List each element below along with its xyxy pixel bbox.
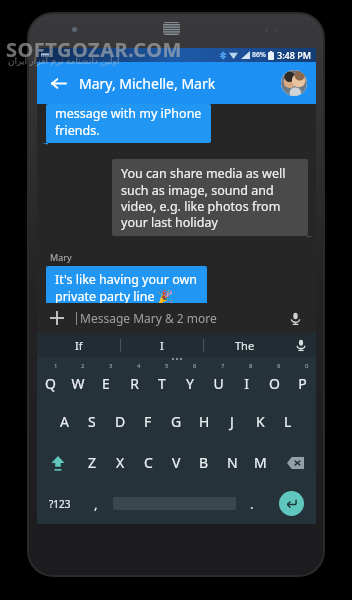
staticText: SOFTGOZAR.COM	[6, 36, 182, 63]
staticText: B	[199, 453, 209, 472]
button[interactable]: ,	[82, 483, 110, 524]
button[interactable]: 6	[176, 361, 204, 401]
staticText: E	[102, 374, 110, 393]
button[interactable]: Send	[266, 483, 316, 524]
staticText: W	[71, 374, 85, 393]
button[interactable]: Group photo	[281, 70, 307, 96]
button[interactable]: A	[50, 401, 78, 442]
staticText: C	[144, 453, 153, 472]
staticText: V	[172, 453, 181, 472]
button[interactable]: ?123	[37, 483, 82, 524]
button[interactable]: F	[134, 401, 162, 442]
button[interactable]: It's like having your own private party …	[46, 266, 207, 309]
staticText: ,	[94, 495, 98, 513]
button[interactable]: C	[134, 442, 162, 483]
staticText: T	[158, 374, 166, 393]
staticText: 2	[81, 362, 85, 370]
button[interactable]: 7	[204, 361, 232, 401]
button[interactable]: Shift	[37, 442, 78, 483]
button[interactable]: Voice typing	[286, 333, 316, 357]
button[interactable]: L	[274, 401, 302, 442]
button[interactable]: 4	[120, 361, 148, 401]
button[interactable]: M	[246, 442, 274, 483]
staticText: Message Mary & 2 more	[80, 310, 217, 326]
button[interactable]: 3	[92, 361, 120, 401]
staticText: O	[269, 374, 280, 393]
staticText: 3:48 PM	[277, 49, 311, 61]
button[interactable]: Voice input	[284, 307, 306, 329]
staticText: message with my iPhone friends.	[55, 105, 202, 138]
button[interactable]: Backspace	[274, 442, 316, 483]
staticText: ?123	[49, 497, 71, 511]
button[interactable]: 0	[288, 361, 316, 401]
staticText: .	[250, 495, 254, 513]
staticText: You can share media as well such as imag…	[121, 165, 299, 230]
button[interactable]: B	[190, 442, 218, 483]
staticText: N	[227, 453, 238, 472]
staticText: S	[88, 412, 96, 431]
staticText: 0	[305, 362, 309, 370]
button[interactable]: S	[78, 401, 106, 442]
button[interactable]: message with my iPhone friends.	[46, 104, 211, 143]
staticText: H	[199, 412, 210, 431]
staticText: J	[230, 412, 234, 431]
staticText: 8	[249, 362, 253, 370]
button[interactable]: 5	[148, 361, 176, 401]
staticText: X	[116, 453, 125, 472]
staticText: I	[244, 374, 249, 393]
button[interactable]: Back	[45, 70, 71, 96]
staticText: 6	[193, 362, 197, 370]
staticText: M	[254, 453, 267, 472]
button[interactable]	[110, 483, 238, 524]
button[interactable]: X	[106, 442, 134, 483]
button[interactable]: J	[218, 401, 246, 442]
staticText: U	[213, 374, 224, 393]
button[interactable]: .	[238, 483, 266, 524]
button[interactable]: Attach	[46, 307, 68, 329]
staticText: 7	[221, 362, 225, 370]
staticText: Y	[186, 374, 194, 393]
button[interactable]: If	[37, 333, 120, 357]
staticText: اولین دانشنامه نرم افزار ایران	[8, 54, 120, 66]
button[interactable]: 8	[232, 361, 260, 401]
button[interactable]: N	[218, 442, 246, 483]
staticText: G	[171, 412, 182, 431]
button[interactable]: I	[121, 333, 203, 357]
staticText: 1	[54, 362, 58, 370]
staticText: P	[298, 374, 307, 393]
button[interactable]: G	[162, 401, 190, 442]
staticText: Mary	[50, 251, 72, 263]
button[interactable]: The	[204, 333, 286, 357]
button[interactable]: You can share media as well such as imag…	[112, 159, 308, 236]
staticText: I	[160, 338, 164, 353]
staticText: Z	[88, 453, 97, 472]
staticText: D	[115, 412, 126, 431]
staticText: It's like having your own private party …	[55, 271, 198, 304]
staticText: 5	[165, 362, 169, 370]
button[interactable]: K	[246, 401, 274, 442]
staticText: If	[75, 338, 83, 353]
button[interactable]: Attach	[37, 303, 316, 333]
button[interactable]: V	[162, 442, 190, 483]
button[interactable]: 9	[260, 361, 288, 401]
button[interactable]: 1	[37, 361, 64, 401]
staticText: 3	[109, 362, 113, 370]
staticText: 9	[277, 362, 281, 370]
staticText: F	[144, 412, 152, 431]
staticText: Mary, Michelle, Mark	[79, 74, 216, 93]
button[interactable]: Z	[78, 442, 106, 483]
staticText: 4	[137, 362, 141, 370]
staticText: L	[284, 412, 292, 431]
button[interactable]: D	[106, 401, 134, 442]
button[interactable]: Back	[37, 62, 316, 104]
staticText: R	[130, 374, 139, 393]
staticText: 86%	[252, 50, 266, 60]
staticText: Q	[45, 374, 56, 393]
staticText: The	[235, 338, 255, 353]
staticText: K	[256, 412, 265, 431]
button[interactable]: H	[190, 401, 218, 442]
staticText: A	[60, 412, 69, 431]
button[interactable]: 2	[64, 361, 92, 401]
